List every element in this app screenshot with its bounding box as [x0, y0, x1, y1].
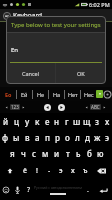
staticText: ь	[76, 148, 81, 159]
button[interactable]: ?	[23, 180, 34, 200]
staticText: я	[10, 148, 15, 159]
button[interactable]: Shift	[0, 161, 19, 180]
button[interactable]: й	[0, 113, 11, 129]
staticText: ё	[23, 166, 27, 176]
staticText: с	[32, 148, 37, 159]
staticText: и	[54, 148, 60, 159]
button[interactable]: ю	[95, 145, 106, 161]
button[interactable]: Cancel	[7, 63, 55, 83]
button[interactable]: ф	[0, 129, 11, 145]
staticText: .	[87, 185, 89, 195]
staticText: ю	[97, 148, 104, 159]
staticText: а	[35, 132, 40, 143]
staticText: в	[25, 132, 30, 143]
button[interactable]: ё	[19, 161, 31, 180]
button[interactable]: я	[6, 145, 18, 161]
button[interactable]: !	[31, 161, 43, 180]
button[interactable]: ч	[18, 145, 29, 161]
button[interactable]: т	[62, 145, 73, 161]
button[interactable]: Ео	[0, 87, 16, 101]
staticText: Нес	[84, 91, 94, 98]
button[interactable]: ш	[72, 113, 82, 129]
staticText: ABC	[91, 104, 100, 110]
staticText: ъ	[83, 166, 88, 176]
staticText: б	[87, 148, 92, 159]
button[interactable]: щ	[82, 113, 92, 129]
staticText: Не	[37, 91, 45, 98]
staticText: п	[45, 132, 50, 143]
button[interactable]: е	[42, 113, 52, 129]
button[interactable]: з	[92, 113, 102, 129]
button[interactable]: Backspace	[91, 161, 112, 180]
button[interactable]: ы	[11, 129, 22, 145]
button[interactable]: Нет	[65, 87, 80, 101]
staticText: Ей	[21, 91, 28, 98]
button[interactable]: э	[55, 161, 67, 180]
staticText: у	[25, 116, 30, 127]
staticText: ш	[73, 116, 81, 127]
staticText: н	[54, 116, 60, 127]
staticText: 123	[11, 104, 19, 110]
staticText: ф	[2, 132, 9, 143]
staticText: ж	[94, 132, 101, 143]
staticText: д	[85, 132, 90, 143]
button[interactable]: и	[51, 145, 62, 161]
staticText: щ	[83, 116, 91, 127]
staticText: En	[11, 46, 19, 54]
button[interactable]: д	[82, 129, 92, 145]
button[interactable]: х	[67, 161, 79, 180]
button[interactable]: э	[102, 129, 112, 145]
button[interactable]: с	[29, 145, 40, 161]
staticText: к	[35, 116, 40, 127]
button[interactable]: б	[84, 145, 95, 161]
staticText: ч	[21, 148, 26, 159]
button[interactable]: х	[102, 113, 112, 129]
button[interactable]: ж	[92, 129, 102, 145]
button[interactable]: Next layout	[57, 103, 66, 112]
button[interactable]: м	[40, 145, 51, 161]
staticText: м	[42, 148, 49, 159]
button[interactable]: Expand suggestions	[96, 90, 103, 98]
staticText: з	[95, 116, 99, 127]
button[interactable]: Enter	[94, 180, 112, 200]
staticText: х	[71, 166, 75, 176]
button[interactable]: Previous layout	[43, 103, 52, 112]
button[interactable]: р	[52, 129, 62, 145]
button[interactable]: OK	[56, 63, 105, 83]
button[interactable]: Settings	[104, 91, 111, 98]
staticText: OK	[77, 70, 85, 77]
button[interactable]: Up	[2, 11, 11, 20]
button[interactable]: п	[42, 129, 52, 145]
button[interactable]: Voice input	[11, 180, 23, 200]
button[interactable]: Space	[34, 180, 82, 200]
staticText: !	[36, 166, 38, 176]
button[interactable]: -	[43, 161, 55, 180]
staticText: э	[59, 166, 63, 176]
button[interactable]: На	[49, 87, 64, 101]
staticText: о	[65, 132, 70, 143]
staticText: р	[55, 132, 60, 143]
staticText: На	[53, 91, 61, 98]
button[interactable]: н	[52, 113, 62, 129]
button[interactable]: Не	[33, 87, 48, 101]
button[interactable]: к	[32, 113, 42, 129]
button[interactable]: ц	[11, 113, 22, 129]
button[interactable]: ъ	[79, 161, 91, 180]
button[interactable]: г	[62, 113, 72, 129]
button[interactable]: в	[22, 129, 32, 145]
button[interactable]: л	[72, 129, 82, 145]
button[interactable]: а	[32, 129, 42, 145]
button[interactable]: Switch to 123	[5, 104, 25, 110]
button[interactable]: Ей	[17, 87, 32, 101]
staticText: Ео	[5, 91, 12, 98]
button[interactable]: Switch to ABC	[85, 104, 106, 110]
staticText: Нет	[68, 91, 78, 98]
button[interactable]: у	[22, 113, 32, 129]
button[interactable]: ь	[73, 145, 84, 161]
button[interactable]: о	[62, 129, 72, 145]
staticText: ы	[13, 132, 20, 143]
button[interactable]: Нес	[81, 87, 96, 101]
staticText: э	[105, 132, 110, 143]
button[interactable]: .	[82, 180, 94, 200]
button[interactable]: Emoji	[0, 180, 11, 200]
